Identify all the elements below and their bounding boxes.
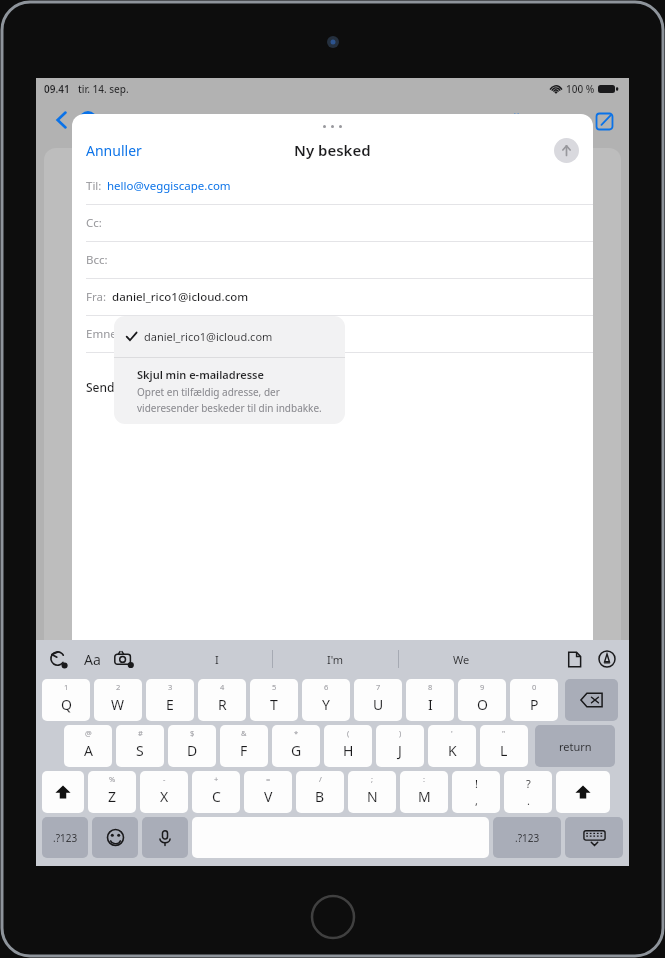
staticText: * xyxy=(294,728,299,738)
button[interactable]: & xyxy=(220,725,268,767)
button[interactable]: 3 xyxy=(146,679,194,721)
button[interactable]: ! xyxy=(452,771,500,813)
staticText: 100 % xyxy=(566,82,595,96)
staticText: / xyxy=(319,774,322,784)
button[interactable]: Delete xyxy=(497,102,535,140)
button[interactable]: .?123 xyxy=(493,817,561,858)
staticText: 9 xyxy=(480,682,485,692)
staticText: = xyxy=(266,774,271,784)
button[interactable]: 7 xyxy=(354,679,402,721)
button[interactable]: 4 xyxy=(198,679,246,721)
button[interactable]: Back xyxy=(44,102,80,138)
button[interactable]: Skjul min e-mailadresse xyxy=(114,358,345,415)
button[interactable]: Til: xyxy=(72,168,593,205)
button[interactable]: Emoji xyxy=(92,817,138,858)
staticText: N xyxy=(367,787,378,806)
button[interactable]: % xyxy=(88,771,136,813)
button[interactable]: Markup xyxy=(593,645,621,673)
button[interactable]: + xyxy=(192,771,240,813)
button[interactable]: ( xyxy=(324,725,372,767)
staticText: 8 xyxy=(428,682,433,692)
staticText: 0 xyxy=(532,682,537,692)
staticText: P xyxy=(530,695,539,714)
button[interactable]: 8 xyxy=(406,679,454,721)
button[interactable]: ? xyxy=(504,771,552,813)
staticText: 1 xyxy=(64,682,69,692)
button[interactable]: 9 xyxy=(458,679,506,721)
staticText: 7 xyxy=(376,682,381,692)
staticText: 2 xyxy=(116,682,121,692)
staticText: 4 xyxy=(220,682,225,692)
staticText: 5 xyxy=(272,682,277,692)
staticText: C xyxy=(212,787,221,806)
staticText: U xyxy=(373,695,384,714)
button[interactable]: Shift xyxy=(556,771,610,813)
button[interactable]: Hide keyboard xyxy=(565,817,623,858)
button[interactable]: $ xyxy=(168,725,216,767)
button[interactable]: Fra: xyxy=(72,279,593,316)
button[interactable]: Send xyxy=(554,138,579,163)
staticText: Aa xyxy=(84,650,101,669)
button[interactable]: Move to folder xyxy=(541,102,579,140)
button[interactable]: We xyxy=(399,644,524,674)
staticText: ( xyxy=(347,728,350,738)
button[interactable]: I xyxy=(162,644,272,674)
button[interactable]: Emne: xyxy=(72,316,593,353)
staticText: T xyxy=(270,695,278,714)
staticText: A xyxy=(84,741,93,760)
staticText: W xyxy=(111,695,125,714)
button[interactable]: I'm xyxy=(273,644,398,674)
button[interactable]: Compose xyxy=(585,102,623,140)
button[interactable]: # xyxy=(116,725,164,767)
staticText: @ xyxy=(85,728,92,738)
button[interactable]: " xyxy=(480,725,528,767)
staticText: 6 xyxy=(324,682,329,692)
button[interactable]: / xyxy=(296,771,344,813)
button[interactable]: Cc: xyxy=(72,205,593,242)
button[interactable]: 0 xyxy=(510,679,558,721)
staticText: ; xyxy=(371,774,374,784)
button[interactable]: @ xyxy=(64,725,112,767)
button[interactable]: .?123 xyxy=(42,817,88,858)
staticText: videresender beskeder til din indbakke. xyxy=(137,401,322,415)
button[interactable]: ' xyxy=(428,725,476,767)
staticText: Til: xyxy=(86,178,102,194)
button[interactable]: daniel_rico1@icloud.com xyxy=(114,316,345,357)
staticText: daniel_rico1@icloud.com xyxy=(112,289,249,305)
button[interactable]: Attach document xyxy=(560,645,588,673)
staticText: V xyxy=(264,787,273,806)
staticText: X xyxy=(160,787,169,806)
button[interactable]: Shift xyxy=(42,771,84,813)
staticText: Z xyxy=(108,787,117,806)
button[interactable]: Annuller xyxy=(80,137,148,164)
staticText: Cc: xyxy=(86,215,102,231)
button[interactable]: - xyxy=(140,771,188,813)
staticText: B xyxy=(315,787,325,806)
button[interactable]: ; xyxy=(348,771,396,813)
button[interactable]: 6 xyxy=(302,679,350,721)
button[interactable]: 2 xyxy=(94,679,142,721)
staticText: R xyxy=(218,695,227,714)
staticText: E xyxy=(166,695,174,714)
button[interactable]: Bcc: xyxy=(72,242,593,279)
button[interactable]: Dictate xyxy=(142,817,188,858)
button[interactable]: 1 xyxy=(42,679,90,721)
staticText: Sendt fra min iPad xyxy=(86,379,192,395)
button[interactable]: Undo xyxy=(44,645,72,673)
button[interactable]: Insert photo xyxy=(110,645,138,673)
staticText: Y xyxy=(322,695,330,714)
button[interactable]: * xyxy=(272,725,320,767)
button[interactable]: : xyxy=(400,771,448,813)
button[interactable]: ) xyxy=(376,725,424,767)
staticText: K xyxy=(448,741,457,760)
button[interactable]: = xyxy=(244,771,292,813)
button[interactable]: 5 xyxy=(250,679,298,721)
staticText: & xyxy=(241,728,247,738)
button[interactable]: return xyxy=(535,725,615,767)
staticText: # xyxy=(138,728,143,738)
staticText: ' xyxy=(451,728,453,738)
button[interactable]: Aa xyxy=(78,645,106,673)
button[interactable]: Backspace xyxy=(565,679,618,721)
